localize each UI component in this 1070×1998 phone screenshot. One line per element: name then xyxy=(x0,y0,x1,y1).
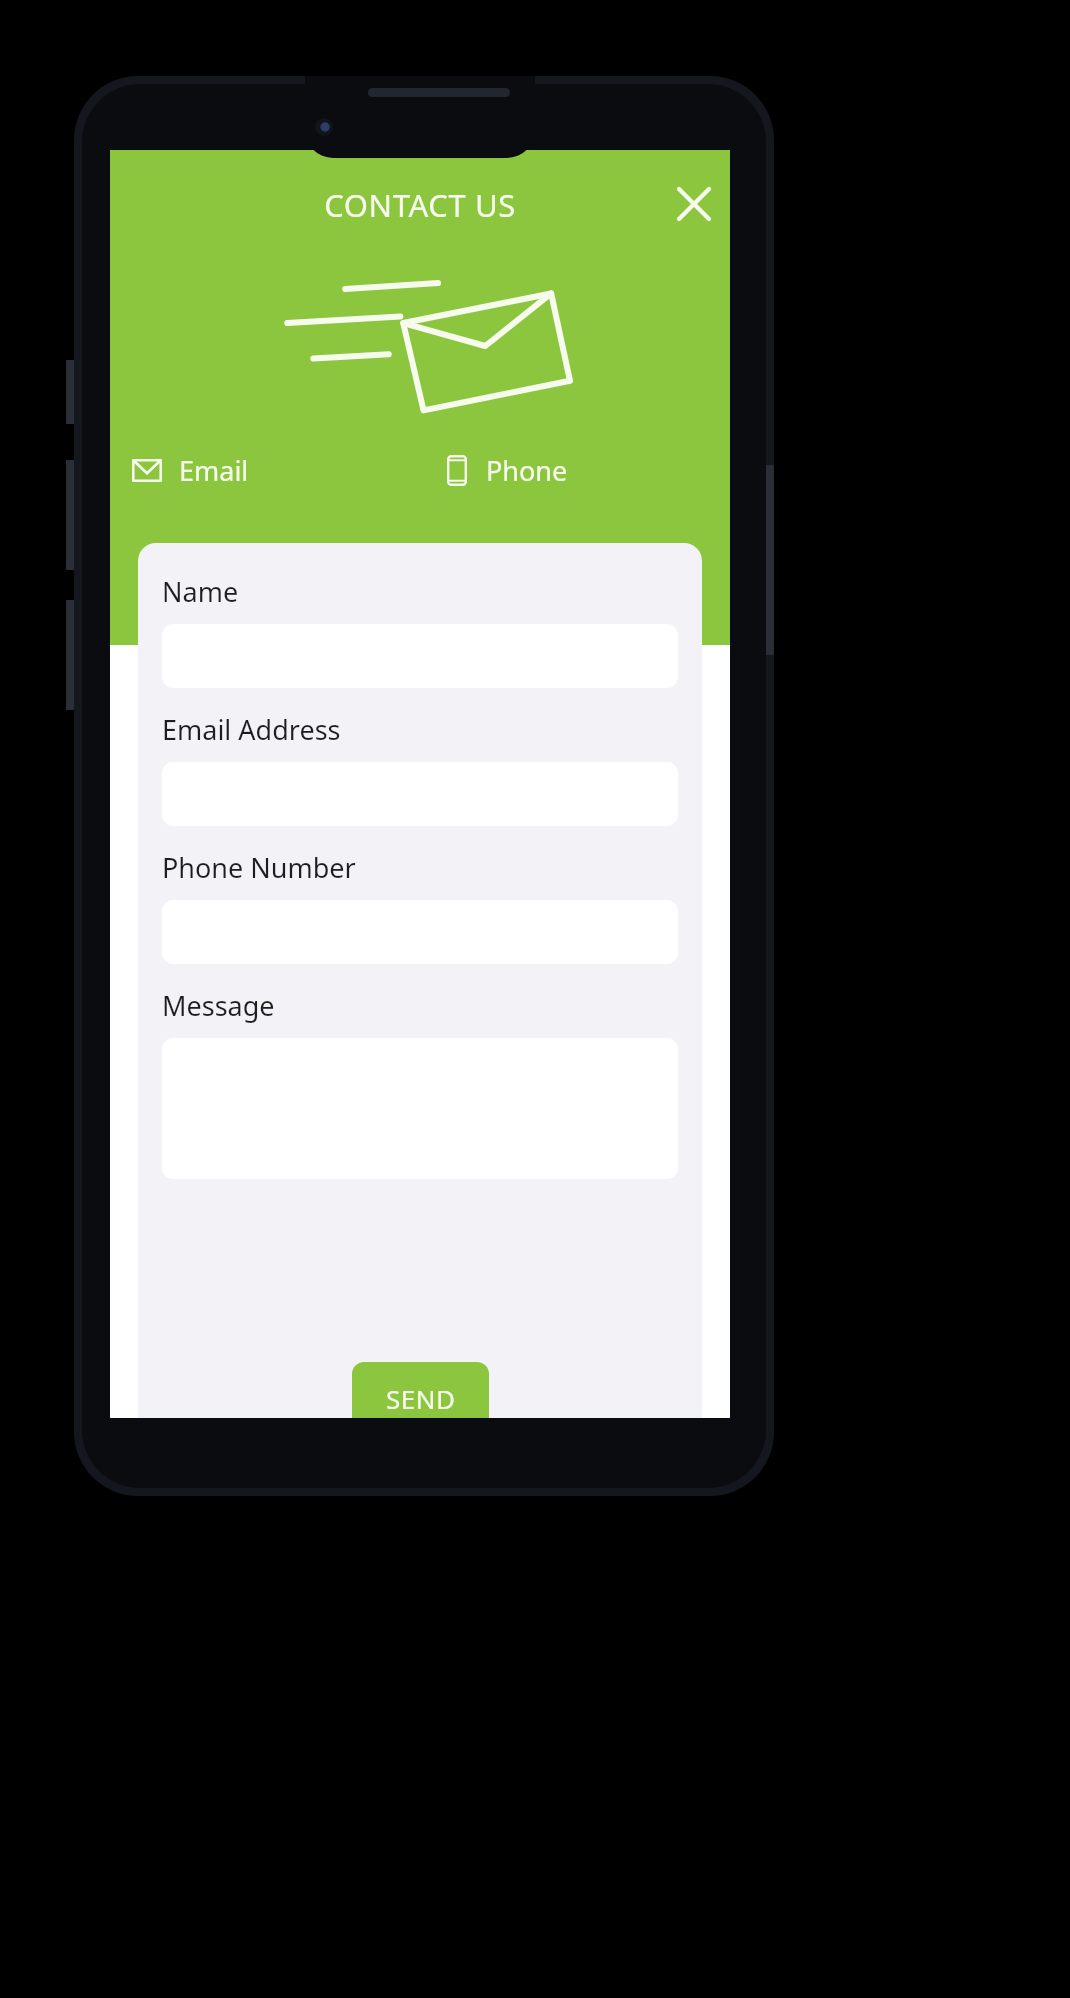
staticText: Email xyxy=(179,452,249,489)
staticText: Phone Number xyxy=(162,849,356,886)
staticText: CONTACT US xyxy=(110,184,730,226)
staticText: Email Address xyxy=(162,711,341,748)
staticText: SEND xyxy=(386,1381,456,1416)
button[interactable]: Email xyxy=(110,442,420,498)
button[interactable]: Close xyxy=(662,172,726,236)
button[interactable]: SEND xyxy=(352,1362,489,1418)
staticText: Phone xyxy=(486,452,568,489)
button[interactable]: Phone xyxy=(420,442,730,498)
staticText: Message xyxy=(162,987,275,1024)
staticText: Name xyxy=(162,573,239,610)
